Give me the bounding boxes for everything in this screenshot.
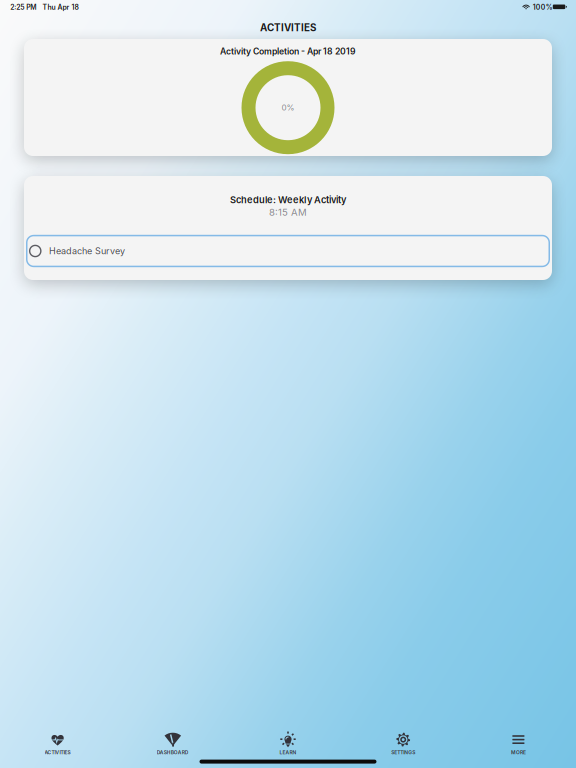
staticText: LEARN [279, 749, 296, 755]
staticText: Activity Completion - Apr 18 2019 [220, 46, 356, 57]
staticText: ACTIVITIES [45, 749, 71, 755]
staticText: DASHBOARD [157, 749, 189, 755]
staticText: ACTIVITIES [260, 22, 316, 34]
staticText: 0% [281, 103, 294, 112]
button[interactable]: Headache Survey [27, 236, 549, 266]
staticText: SETTINGS [391, 749, 415, 755]
button[interactable]: MORE [461, 727, 576, 761]
staticText: 8:15 AM [269, 206, 307, 218]
button[interactable]: DASHBOARD [115, 727, 230, 761]
staticText: Headache Survey [49, 245, 125, 256]
staticText: Thu Apr 18 [42, 3, 78, 11]
staticText: Schedule: Weekly Activity [230, 194, 346, 206]
button[interactable]: LEARN [230, 727, 346, 761]
button[interactable]: SETTINGS [346, 727, 461, 761]
staticText: 2:25 PM [10, 3, 36, 11]
button[interactable]: ACTIVITIES [0, 727, 115, 761]
staticText: 100% [533, 3, 553, 11]
staticText: MORE [511, 749, 526, 755]
